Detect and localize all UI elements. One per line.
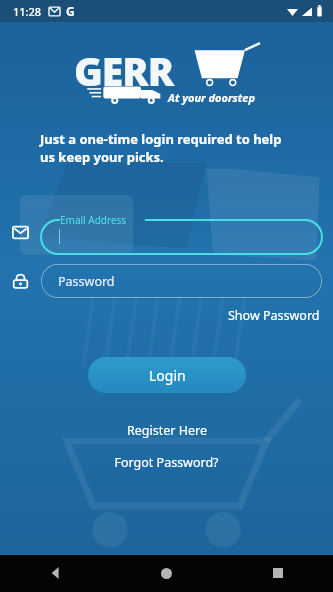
staticText: 11:28: [13, 4, 42, 19]
button[interactable]: Password: [41, 264, 322, 298]
button[interactable]: Email Address: [41, 209, 322, 254]
button[interactable]: Back: [0, 554, 111, 592]
staticText: Forgot Password?: [114, 454, 219, 471]
button[interactable]: Home: [111, 554, 222, 592]
other: Password: [6, 267, 34, 295]
staticText: Password: [58, 273, 115, 290]
button[interactable]: Register Here: [113, 419, 221, 442]
staticText: GERR: [74, 44, 174, 97]
button[interactable]: Recent apps: [222, 554, 333, 592]
staticText: Email Address: [60, 213, 127, 227]
button[interactable]: Show Password: [215, 305, 333, 326]
button[interactable]: Forgot Password?: [100, 451, 233, 474]
staticText: Show Password: [228, 307, 320, 324]
staticText: Login: [149, 366, 186, 385]
staticText: Just a one-time login required to help u…: [40, 130, 293, 166]
button[interactable]: Login: [88, 357, 246, 393]
staticText: Register Here: [127, 422, 207, 439]
other: Email: [6, 218, 34, 246]
staticText: G: [66, 3, 75, 19]
staticText: At your doorstep: [168, 90, 256, 105]
